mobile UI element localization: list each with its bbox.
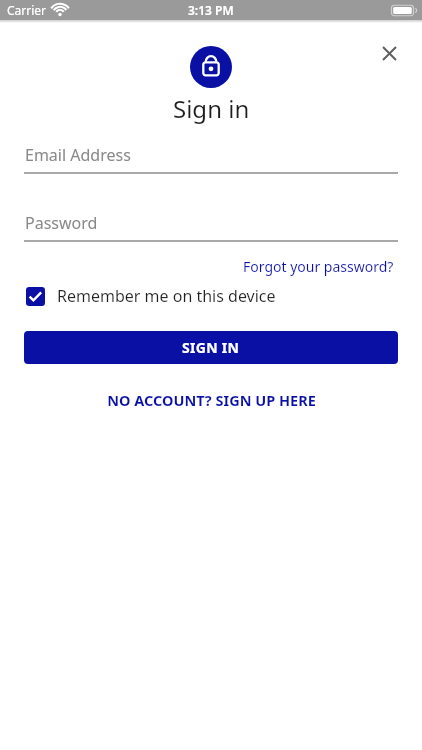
staticText: Sign in [173, 92, 250, 125]
button[interactable]: Forgot your password? [243, 257, 394, 276]
button[interactable]: Remember me on this device [26, 287, 276, 309]
staticText: 3:13 PM [188, 2, 234, 18]
button[interactable]: NO ACCOUNT? SIGN UP HERE [107, 390, 316, 410]
button[interactable] [375, 39, 403, 67]
staticText: SIGN IN [182, 338, 240, 357]
staticText: Password [25, 212, 98, 234]
staticText: Email Address [25, 144, 131, 166]
staticText: Carrier [7, 2, 47, 18]
staticText: NO ACCOUNT? SIGN UP HERE [107, 390, 316, 410]
staticText: Forgot your password? [243, 257, 394, 276]
button[interactable]: SIGN IN [24, 331, 398, 364]
staticText: Remember me on this device [57, 285, 276, 307]
